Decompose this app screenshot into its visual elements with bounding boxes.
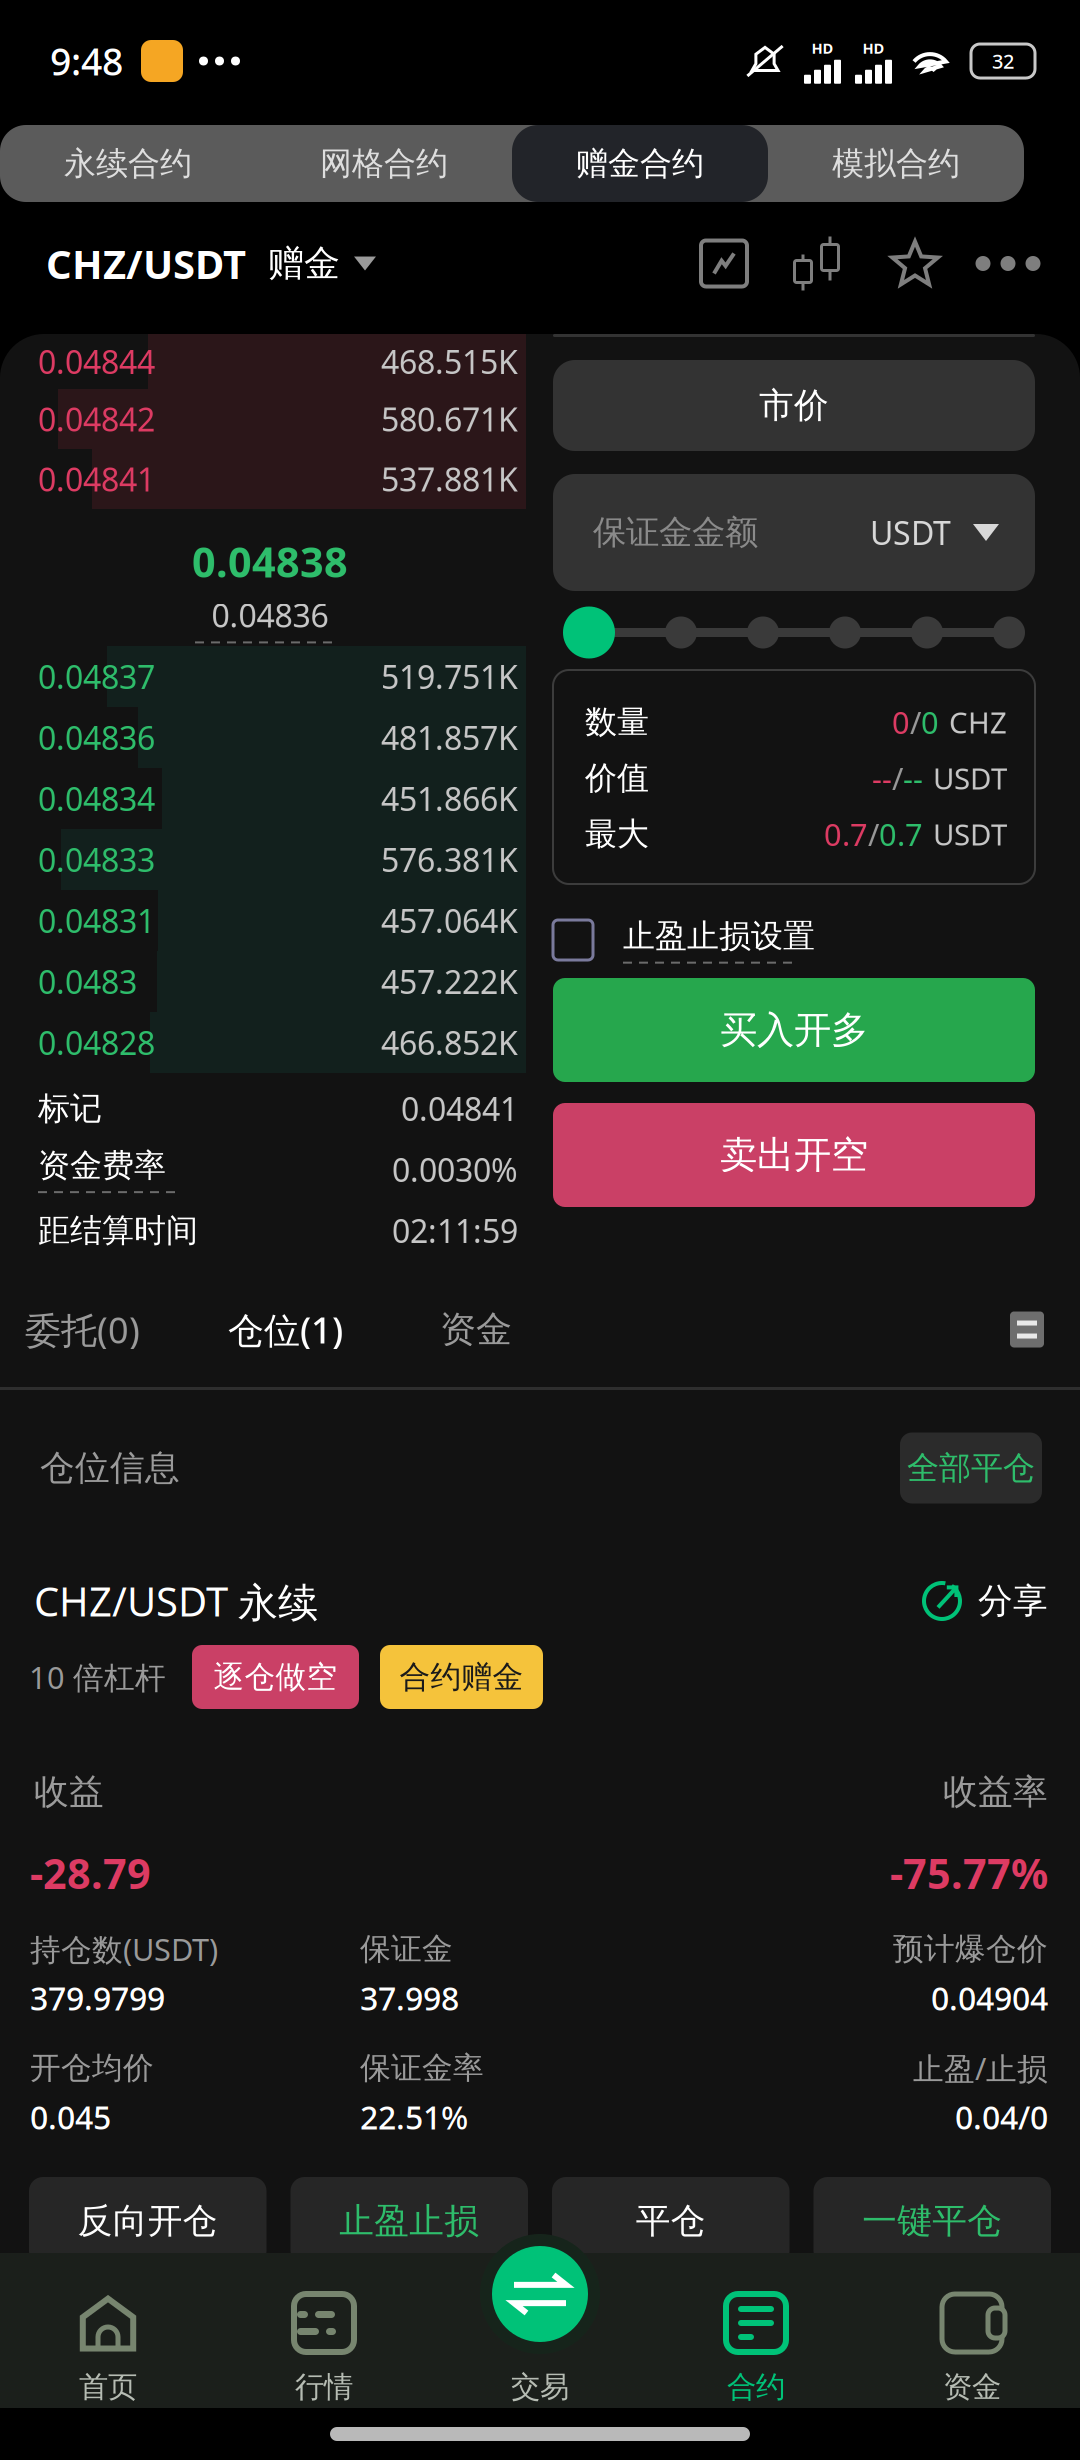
staticText: 止盈/止损 <box>913 2048 1048 2088</box>
staticText: 37.998 <box>360 1977 459 2019</box>
staticText: 0.04904 <box>931 1977 1048 2019</box>
staticText: 0.04841 <box>38 458 155 500</box>
staticText: 0 <box>892 702 910 742</box>
staticText: 0.04842 <box>38 398 155 440</box>
button[interactable]: 止盈止损 <box>290 2177 528 2265</box>
staticText: CHZ/USDT 永续 <box>34 1574 318 1628</box>
button[interactable]: 首页 <box>0 2253 216 2408</box>
button[interactable]: 资金 <box>440 1307 512 1352</box>
button[interactable]: 一键平仓 <box>813 2177 1051 2265</box>
staticText: 379.9799 <box>30 1977 165 2019</box>
button[interactable]: 平仓 <box>552 2177 789 2265</box>
staticText: 0 <box>921 702 939 742</box>
staticText: 赠金 <box>268 241 340 286</box>
button[interactable]: 止盈止损设置 <box>553 916 815 964</box>
staticText: CHZ/USDT <box>46 237 246 290</box>
staticText: 451.866K <box>381 777 518 820</box>
staticText: 预计爆仓价 <box>893 1930 1048 1968</box>
button[interactable]: 分享 <box>922 1580 1048 1622</box>
staticText: 481.857K <box>381 716 518 759</box>
staticText: 0.04836 <box>38 716 155 759</box>
button[interactable]: 网格合约 <box>256 125 512 202</box>
staticText: 标记 <box>38 1089 102 1128</box>
staticText: USDT <box>933 758 1007 797</box>
button[interactable]: More options <box>980 255 1036 271</box>
staticText: 02:11:59 <box>392 1209 518 1252</box>
button[interactable]: Favorite <box>891 239 939 287</box>
button[interactable]: 永续合约 <box>0 125 256 202</box>
button[interactable]: 模拟合约 <box>768 125 1024 202</box>
staticText: 行情 <box>295 2369 353 2405</box>
staticText: 仓位(1) <box>228 1306 343 1353</box>
staticText: -75.77% <box>890 1846 1048 1900</box>
staticText: 买入开多 <box>720 1007 868 1053</box>
staticText: 457.064K <box>381 899 518 942</box>
staticText: 逐仓做空 <box>213 1658 337 1696</box>
staticText: 0.04833 <box>38 838 155 881</box>
staticText: 最大 <box>585 814 649 854</box>
staticText: 537.881K <box>381 458 518 500</box>
staticText: 收益率 <box>943 1771 1048 1813</box>
staticText: 全部平仓 <box>907 1448 1035 1488</box>
staticText: 0.04837 <box>38 655 155 698</box>
staticText: 0.04836 <box>211 594 328 636</box>
button[interactable]: Chart <box>701 240 747 286</box>
staticText: USDT <box>870 511 951 554</box>
staticText: 0.04841 <box>401 1087 518 1130</box>
staticText: 网格合约 <box>320 144 448 183</box>
staticText: HD <box>811 38 833 58</box>
staticText: / <box>910 702 921 742</box>
staticText: 0.04/0 <box>955 2096 1048 2138</box>
staticText: -28.79 <box>30 1846 151 1900</box>
staticText: 委托(0) <box>25 1306 140 1353</box>
staticText: 止盈止损设置 <box>623 916 815 956</box>
staticText: 数量 <box>585 702 649 742</box>
button[interactable]: 资金 <box>864 2253 1080 2408</box>
staticText: 持仓数(USDT) <box>30 1929 218 1969</box>
staticText: 仓位信息 <box>40 1447 180 1489</box>
staticText: 卖出开空 <box>720 1132 868 1178</box>
staticText: 首页 <box>79 2369 137 2405</box>
staticText: 反向开仓 <box>78 2200 218 2242</box>
staticText: 平仓 <box>636 2200 706 2242</box>
staticText: CHZ <box>949 702 1007 741</box>
staticText: 519.751K <box>381 655 518 698</box>
staticText: / <box>868 814 879 854</box>
staticText: 468.515K <box>381 340 518 383</box>
staticText: 开仓均价 <box>30 2049 154 2087</box>
button[interactable]: 委托(0) <box>25 1306 228 1353</box>
staticText: USDT <box>933 814 1007 853</box>
staticText: 0.045 <box>30 2096 111 2138</box>
button[interactable]: CHZ/USDT <box>46 237 376 290</box>
staticText: 距结算时间 <box>38 1211 198 1250</box>
staticText: 保证金金额 <box>593 512 758 553</box>
button[interactable]: 反向开仓 <box>29 2177 266 2265</box>
button[interactable]: 买入开多 <box>553 978 1035 1082</box>
button[interactable]: Trade <box>478 2232 602 2356</box>
button[interactable]: 仓位(1) <box>228 1306 440 1353</box>
staticText: 580.671K <box>381 398 518 440</box>
staticText: 9:48 <box>50 36 123 86</box>
staticText: 576.381K <box>381 838 518 881</box>
button[interactable]: 赠金合约 <box>512 125 768 202</box>
staticText: 资金费率 <box>38 1146 166 1185</box>
staticText: 0.04838 <box>192 534 348 589</box>
staticText: 止盈止损 <box>339 2200 479 2242</box>
button[interactable]: Settings <box>1010 1311 1044 1347</box>
button[interactable]: 交易 <box>432 2253 648 2408</box>
staticText: 合约赠金 <box>399 1658 523 1696</box>
staticText: 457.222K <box>381 960 518 1003</box>
button[interactable]: Candlestick chart <box>796 240 837 286</box>
button[interactable]: 卖出开空 <box>553 1103 1035 1207</box>
button[interactable]: 合约 <box>648 2253 864 2408</box>
button[interactable]: 行情 <box>216 2253 432 2408</box>
staticText: 交易 <box>511 2369 569 2405</box>
staticText: 0.0030% <box>392 1148 518 1191</box>
staticText: / <box>892 758 903 798</box>
button[interactable]: 全部平仓 <box>900 1432 1042 1503</box>
staticText: 永续合约 <box>64 144 192 183</box>
staticText: 466.852K <box>381 1021 518 1064</box>
staticText: 市价 <box>759 384 829 427</box>
staticText: 0.0483 <box>38 960 137 1003</box>
staticText: 0.7 <box>879 814 923 854</box>
